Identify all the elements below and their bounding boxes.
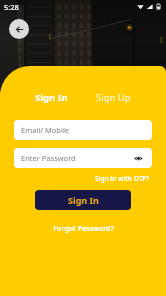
button[interactable]: Forgot Password?: [49, 222, 118, 236]
staticText: Enter Password: [21, 153, 76, 163]
button[interactable]: Back: [9, 19, 29, 39]
staticText: 5:28: [4, 2, 19, 12]
button[interactable]: Enter Password: [14, 148, 152, 168]
button[interactable]: Sign in with OTP?: [93, 173, 152, 184]
staticText: Sign Up: [96, 91, 131, 104]
staticText: Forgot Password?: [53, 224, 114, 234]
staticText: Sign In: [68, 194, 99, 206]
button[interactable]: Sign In: [29, 88, 74, 107]
staticText: Email/ Mobile: [21, 125, 70, 135]
staticText: Sign In: [35, 91, 68, 104]
staticText: Sign in with OTP?: [95, 174, 150, 183]
button[interactable]: Email/ Mobile: [14, 120, 152, 140]
button[interactable]: Sign Up: [90, 88, 137, 107]
button[interactable]: Sign In: [35, 190, 131, 210]
button[interactable]: Show password: [131, 151, 145, 165]
